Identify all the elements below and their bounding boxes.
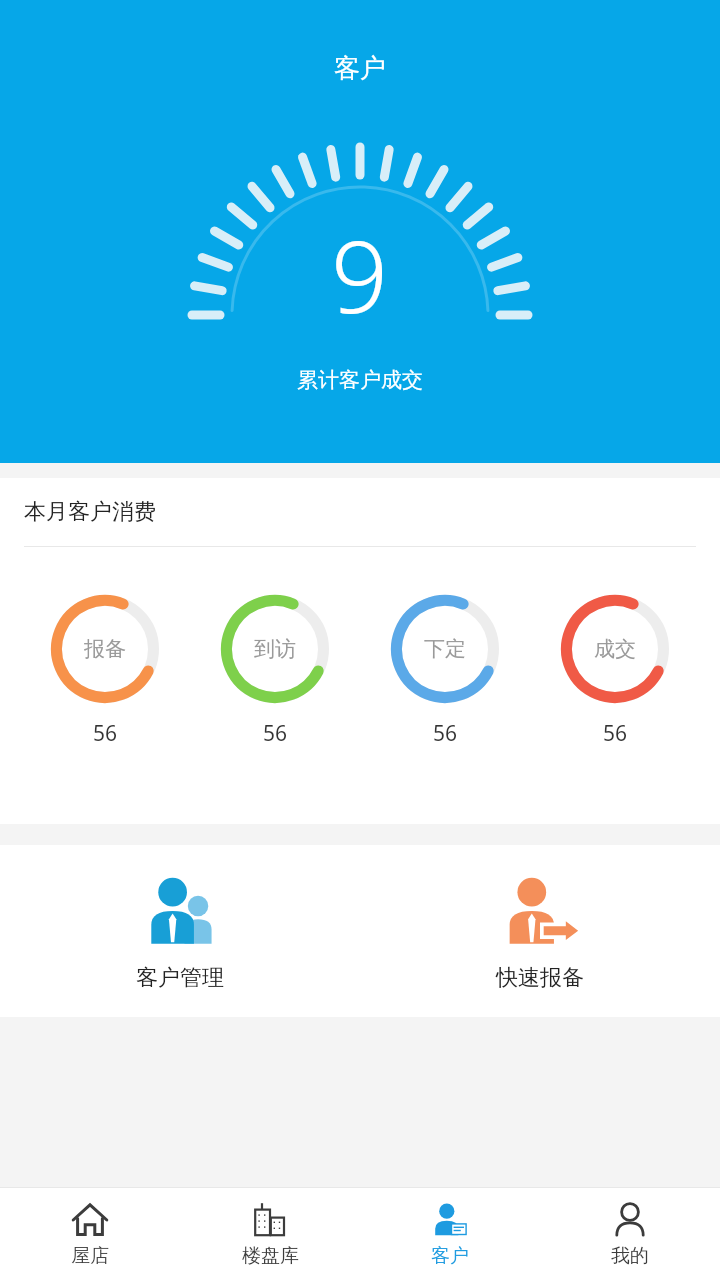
staticText: 累计客户成交 <box>297 367 423 393</box>
staticText: 本月客户消费 <box>24 498 156 526</box>
staticText: 快速报备 <box>496 964 584 992</box>
button[interactable]: 我的 <box>540 1188 720 1280</box>
staticText: 报备 <box>84 636 126 662</box>
staticText: 客户管理 <box>136 964 224 992</box>
button[interactable]: 报备 <box>40 589 170 748</box>
staticText: 56 <box>263 719 288 748</box>
staticText: 56 <box>433 719 458 748</box>
staticText: 我的 <box>611 1244 649 1268</box>
staticText: 56 <box>93 719 118 748</box>
staticText: 成交 <box>594 636 636 662</box>
button[interactable]: 下定 <box>380 589 510 748</box>
staticText: 客户 <box>334 52 386 85</box>
staticText: 客户 <box>431 1244 469 1268</box>
staticText: 下定 <box>424 636 466 662</box>
button[interactable]: 快速报备 <box>488 862 592 1000</box>
button[interactable]: 客户管理 <box>128 862 232 1000</box>
button[interactable]: 到访 <box>210 589 340 748</box>
staticText: 楼盘库 <box>242 1244 299 1268</box>
button[interactable]: 客户 <box>360 1188 540 1280</box>
staticText: 屋店 <box>71 1244 109 1268</box>
staticText: 到访 <box>254 636 296 662</box>
staticText: 9 <box>331 206 389 342</box>
button[interactable]: 屋店 <box>0 1188 180 1280</box>
staticText: 56 <box>603 719 628 748</box>
button[interactable]: 成交 <box>550 589 680 748</box>
button[interactable]: 楼盘库 <box>180 1188 360 1280</box>
